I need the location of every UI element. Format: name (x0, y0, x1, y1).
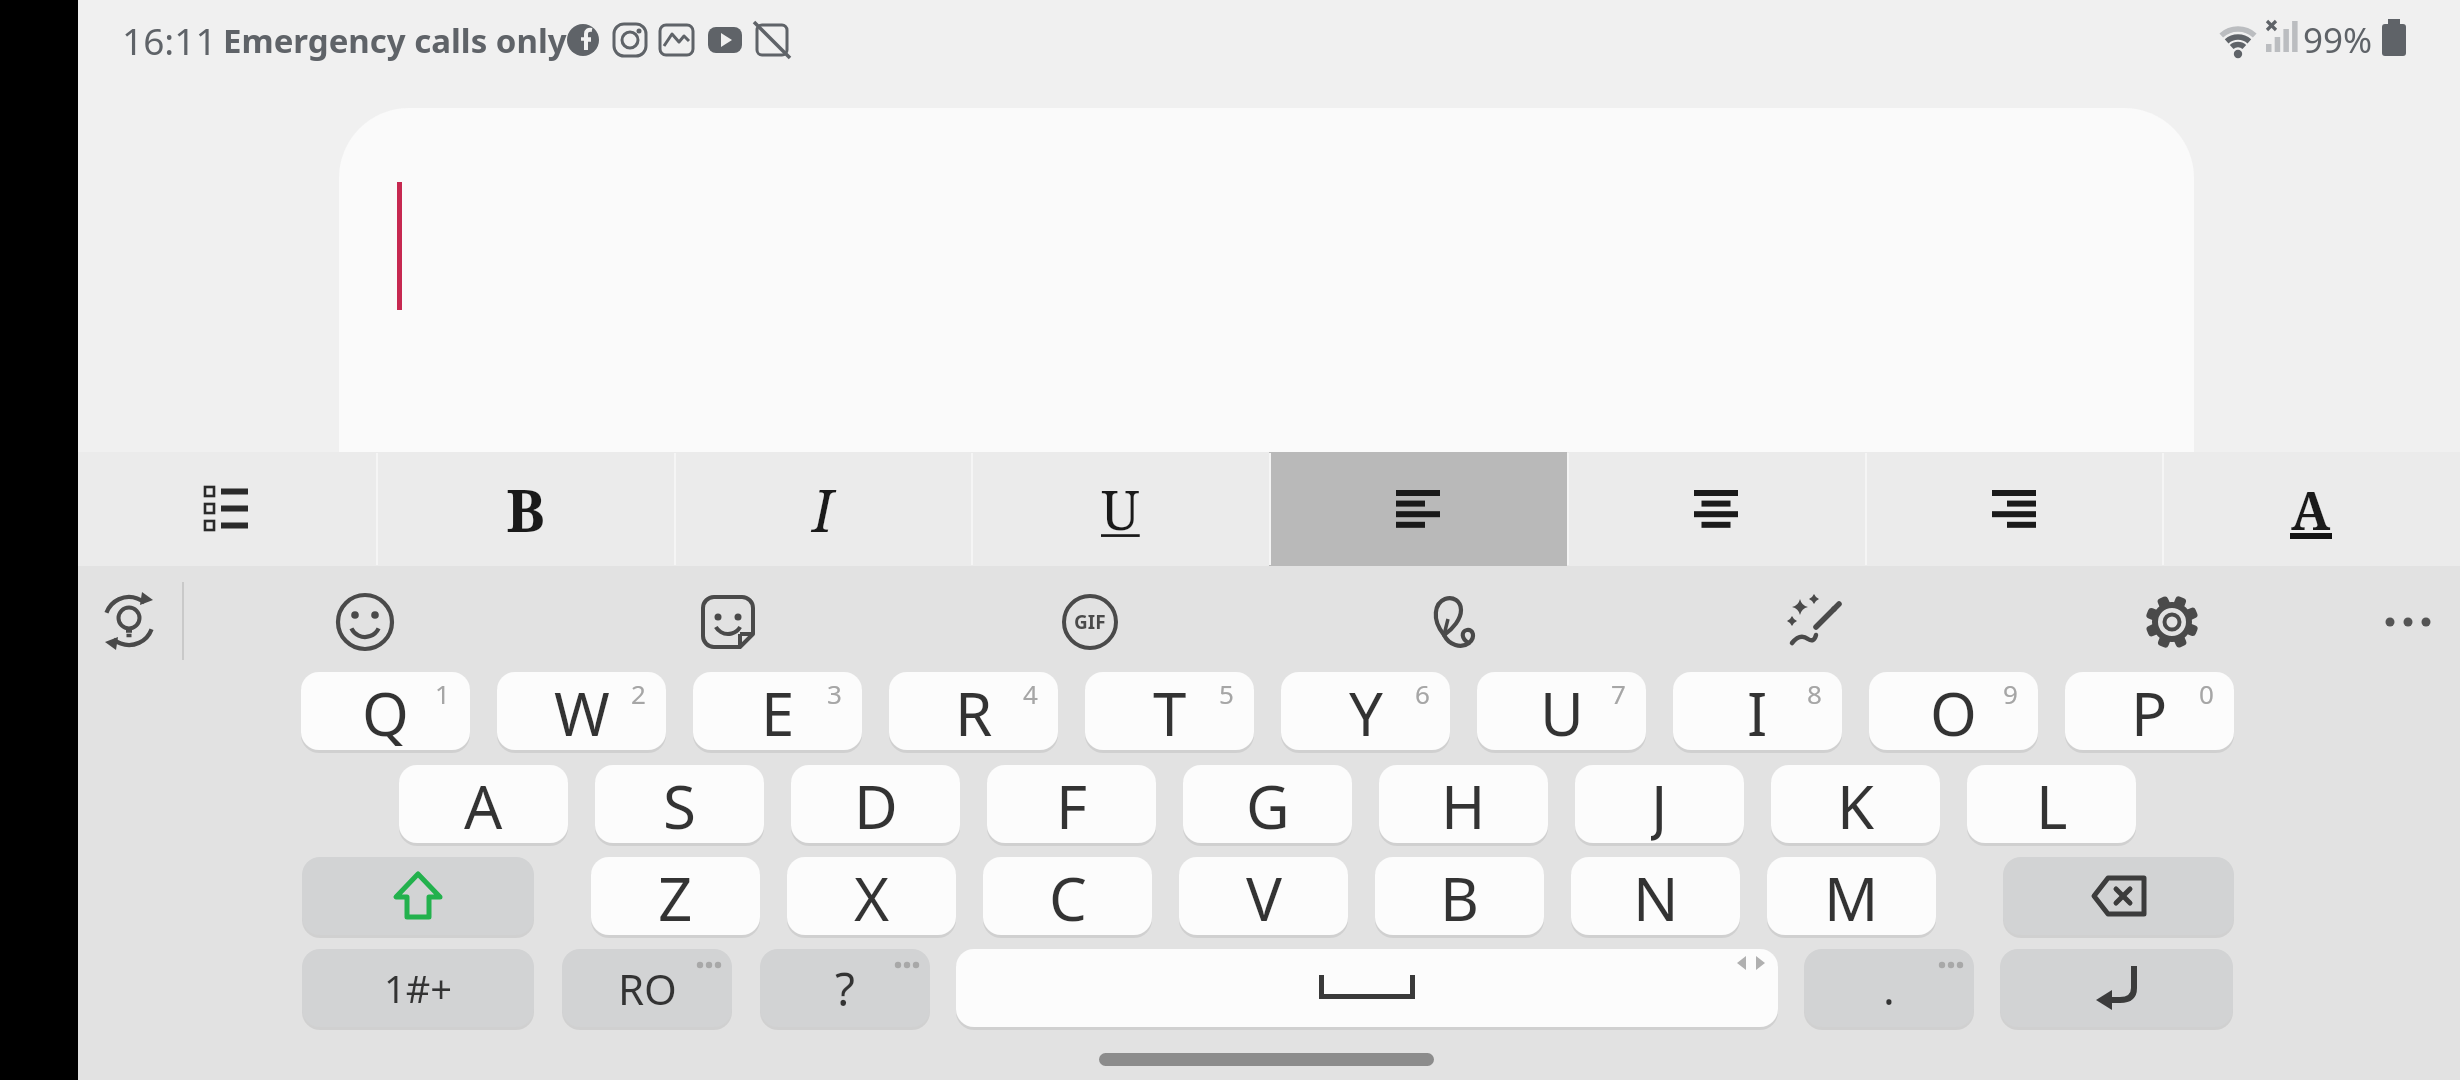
staticText: N (1633, 857, 1679, 935)
button[interactable] (78, 452, 376, 566)
button[interactable]: N (1571, 857, 1740, 935)
staticText: V (1246, 857, 1282, 935)
button[interactable] (96, 588, 162, 654)
button[interactable]: S (595, 765, 764, 843)
button[interactable] (1782, 589, 1848, 655)
button[interactable] (956, 949, 1778, 1027)
staticText: U (1540, 672, 1584, 750)
staticText: 16:11 (122, 15, 217, 65)
staticText: 1#+ (384, 962, 453, 1014)
staticText: O (1930, 672, 1977, 750)
button[interactable]: D (791, 765, 960, 843)
staticText: G (1246, 765, 1290, 843)
staticText: 8 (1807, 676, 1822, 710)
staticText: RO (618, 960, 677, 1017)
staticText: 9 (2003, 676, 2018, 710)
button[interactable]: M (1767, 857, 1936, 935)
staticText: T (1153, 672, 1187, 750)
staticText: R (955, 672, 993, 750)
button[interactable]: P (2065, 672, 2234, 750)
button[interactable] (1099, 1053, 1434, 1066)
button[interactable]: 1#+ (302, 949, 534, 1027)
button[interactable]: L (1967, 765, 2136, 843)
button[interactable]: Q (301, 672, 470, 750)
button[interactable]: V (1179, 857, 1348, 935)
staticText: I (812, 470, 834, 549)
staticText: X (854, 857, 890, 935)
button[interactable]: ? (760, 949, 930, 1027)
button[interactable]: K (1771, 765, 1940, 843)
staticText: ? (835, 957, 855, 1020)
staticText: S (663, 765, 696, 843)
staticText: B (506, 470, 545, 549)
button[interactable]: B (1375, 857, 1544, 935)
button[interactable]: I (674, 452, 972, 566)
button[interactable]: RO (562, 949, 732, 1027)
button[interactable]: O (1869, 672, 2038, 750)
button[interactable]: C (983, 857, 1152, 935)
staticText: C (1049, 857, 1087, 935)
button[interactable] (2000, 949, 2233, 1027)
button[interactable]: W (497, 672, 666, 750)
button[interactable]: U (971, 452, 1269, 566)
button[interactable]: Z (591, 857, 760, 935)
button[interactable]: G (1183, 765, 1352, 843)
staticText: 5 (1219, 676, 1234, 710)
button[interactable] (695, 589, 761, 655)
button[interactable]: . (1804, 949, 1974, 1027)
button[interactable]: U (1477, 672, 1646, 750)
staticText: 6 (1415, 676, 1430, 710)
staticText: 2 (631, 676, 646, 710)
button[interactable] (2375, 589, 2441, 655)
staticText: H (1441, 765, 1486, 843)
staticText: Z (658, 857, 693, 935)
button[interactable] (302, 857, 534, 935)
button[interactable]: R (889, 672, 1058, 750)
button[interactable]: X (787, 857, 956, 935)
staticText: J (1651, 765, 1668, 843)
button[interactable]: A (2162, 452, 2460, 566)
staticText: 1 (435, 676, 450, 710)
staticText: Y (1349, 672, 1383, 750)
button[interactable]: H (1379, 765, 1548, 843)
button[interactable]: T (1085, 672, 1254, 750)
staticText: P (2131, 672, 2168, 750)
button[interactable] (1567, 452, 1865, 566)
button[interactable]: F (987, 765, 1156, 843)
staticText: K (1837, 765, 1875, 843)
staticText: A (464, 765, 503, 843)
staticText: 4 (1023, 676, 1038, 710)
button[interactable]: A (399, 765, 568, 843)
button[interactable] (1419, 589, 1485, 655)
button[interactable] (2139, 589, 2205, 655)
staticText: B (1440, 857, 1479, 935)
staticText: Emergency calls only (223, 18, 567, 63)
staticText: 3 (827, 676, 842, 710)
button[interactable]: J (1575, 765, 1744, 843)
button[interactable] (332, 589, 398, 655)
button[interactable]: Y (1281, 672, 1450, 750)
button[interactable] (1269, 452, 1567, 566)
staticText: W (554, 672, 610, 750)
staticText: A (2291, 474, 2331, 545)
button[interactable]: GIF (1057, 589, 1123, 655)
button[interactable]: I (1673, 672, 1842, 750)
staticText: 0 (2199, 676, 2214, 710)
staticText: I (1747, 672, 1768, 750)
button[interactable]: E (693, 672, 862, 750)
staticText: E (761, 672, 795, 750)
staticText: F (1056, 765, 1088, 843)
staticText: Q (362, 672, 409, 750)
staticText: 7 (1611, 676, 1626, 710)
button[interactable]: B (376, 452, 674, 566)
staticText: . (1883, 958, 1895, 1018)
staticText: 99% (2303, 16, 2373, 64)
staticText: L (2036, 765, 2068, 843)
button[interactable] (1865, 452, 2163, 566)
staticText: M (1824, 857, 1879, 935)
staticText: GIF (1074, 609, 1106, 635)
staticText: U (1101, 472, 1140, 546)
button[interactable] (2003, 857, 2234, 935)
staticText: D (854, 765, 898, 843)
